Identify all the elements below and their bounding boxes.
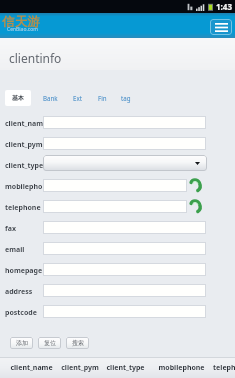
staticText: client_nam <box>5 119 44 129</box>
staticText: Bank <box>43 94 58 102</box>
staticText: mobilephone <box>158 363 205 373</box>
button[interactable] <box>43 137 206 150</box>
button[interactable] <box>43 179 187 192</box>
button[interactable]: Bank <box>38 90 62 106</box>
staticText: CenBiao.com <box>7 26 38 33</box>
staticText: client_type <box>5 161 44 171</box>
button[interactable] <box>43 221 206 234</box>
button[interactable] <box>43 155 207 171</box>
staticText: Ext <box>73 94 82 102</box>
staticText: client_pym <box>5 140 43 150</box>
button[interactable]: Call telephone <box>189 198 203 213</box>
staticText: clientinfo <box>9 50 62 66</box>
staticText: 复位 <box>44 339 56 347</box>
button[interactable]: tag <box>114 90 138 106</box>
staticText: client_pym <box>61 363 99 373</box>
staticText: 1:43 <box>216 1 232 12</box>
staticText: fax <box>5 224 16 234</box>
staticText: email <box>5 245 25 255</box>
staticText: 添加 <box>16 339 28 347</box>
button[interactable]: 搜索 <box>66 337 89 349</box>
button[interactable]: client_name <box>5 357 57 378</box>
button[interactable]: 基本 <box>5 90 31 106</box>
staticText: client_type <box>106 363 145 373</box>
button[interactable] <box>43 242 206 255</box>
staticText: homepage <box>5 266 43 276</box>
staticText: address <box>5 287 33 297</box>
button[interactable]: mobilephone <box>149 357 213 378</box>
staticText: 信天游 <box>2 14 41 30</box>
staticText: tag <box>121 94 131 102</box>
button[interactable]: Call mobilepho <box>189 177 203 192</box>
button[interactable] <box>43 284 206 297</box>
button[interactable] <box>43 305 206 318</box>
button[interactable]: telephor <box>213 357 235 378</box>
staticText: 基本 <box>12 94 24 102</box>
staticText: telephor <box>213 363 235 373</box>
staticText: telephone <box>5 203 41 213</box>
button[interactable]: Fin <box>90 90 114 106</box>
staticText: 搜索 <box>72 339 84 347</box>
staticText: client_name <box>10 363 53 373</box>
button[interactable] <box>43 200 187 213</box>
button[interactable]: client_type <box>102 357 149 378</box>
staticText: mobilepho <box>5 182 43 192</box>
staticText: Fin <box>98 94 107 102</box>
button[interactable] <box>43 116 206 129</box>
button[interactable]: 添加 <box>10 337 33 349</box>
staticText: postcode <box>5 308 37 318</box>
button[interactable]: client_pym <box>57 357 102 378</box>
button[interactable]: Menu <box>210 19 232 35</box>
button[interactable] <box>43 263 206 276</box>
button[interactable]: 复位 <box>38 337 61 349</box>
button[interactable]: Ext <box>65 90 89 106</box>
